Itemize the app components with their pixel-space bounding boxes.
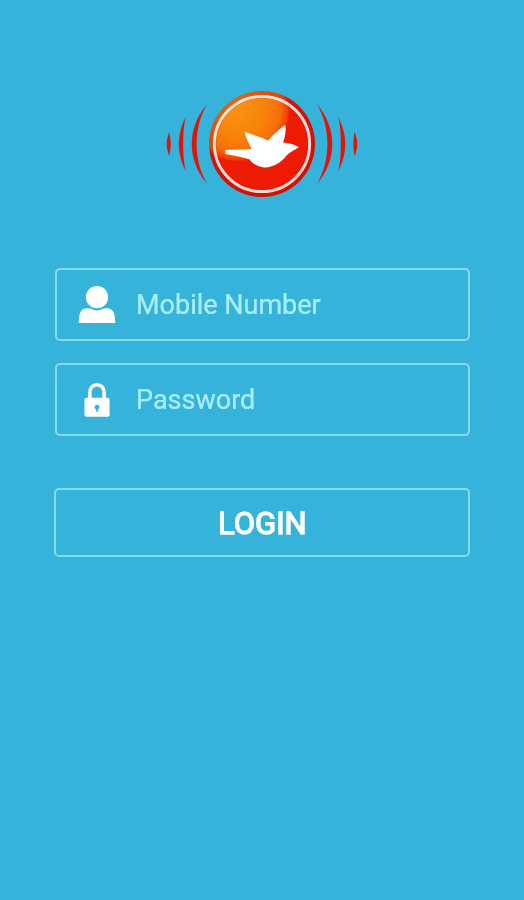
button[interactable]: LOGIN bbox=[54, 488, 470, 557]
button[interactable]: Password bbox=[55, 363, 470, 436]
staticText: Password bbox=[136, 384, 256, 416]
staticText: Mobile Number bbox=[136, 289, 321, 321]
button[interactable]: Mobile Number bbox=[55, 268, 470, 341]
staticText: LOGIN bbox=[218, 505, 307, 541]
